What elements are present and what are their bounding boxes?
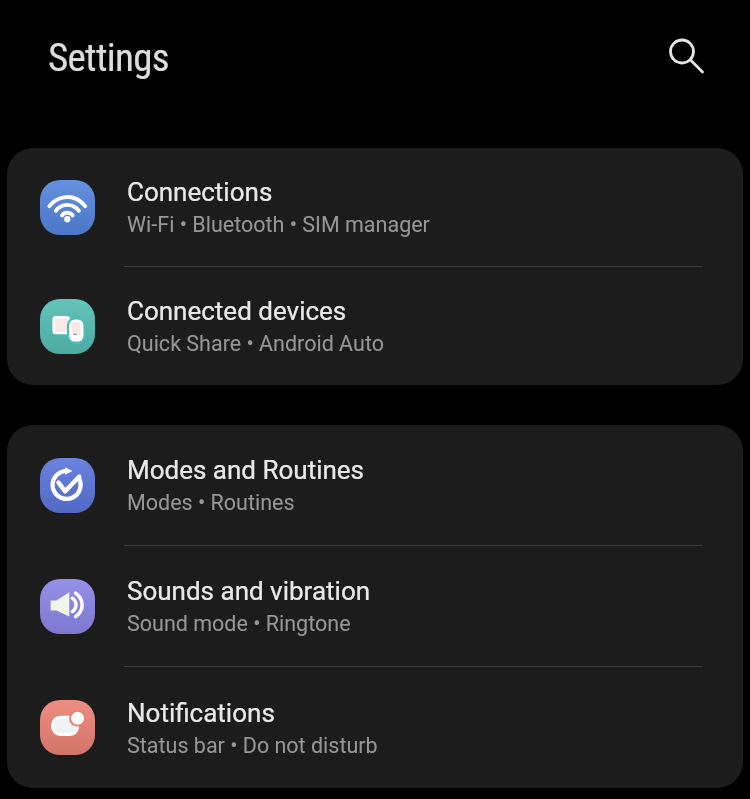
staticText: Modes and Routines bbox=[127, 455, 365, 485]
staticText: Quick Share • Android Auto bbox=[127, 331, 384, 356]
staticText: Sounds and vibration bbox=[127, 576, 371, 606]
button[interactable]: Sounds and vibration bbox=[7, 546, 743, 666]
staticText: Modes • Routines bbox=[127, 490, 295, 515]
button[interactable]: Modes and Routines bbox=[7, 425, 743, 545]
staticText: Status bar • Do not disturb bbox=[127, 733, 378, 758]
staticText: Notifications bbox=[127, 698, 275, 728]
button[interactable]: Connections bbox=[7, 148, 743, 266]
staticText: Wi-Fi • Bluetooth • SIM manager bbox=[127, 212, 430, 237]
staticText: Sound mode • Ringtone bbox=[127, 611, 351, 636]
staticText: Connections bbox=[127, 177, 273, 207]
staticText: Connected devices bbox=[127, 296, 347, 326]
button[interactable]: Notifications bbox=[7, 667, 743, 788]
button[interactable]: Connected devices bbox=[7, 267, 743, 385]
staticText: Settings bbox=[48, 35, 169, 81]
button[interactable] bbox=[659, 28, 707, 76]
